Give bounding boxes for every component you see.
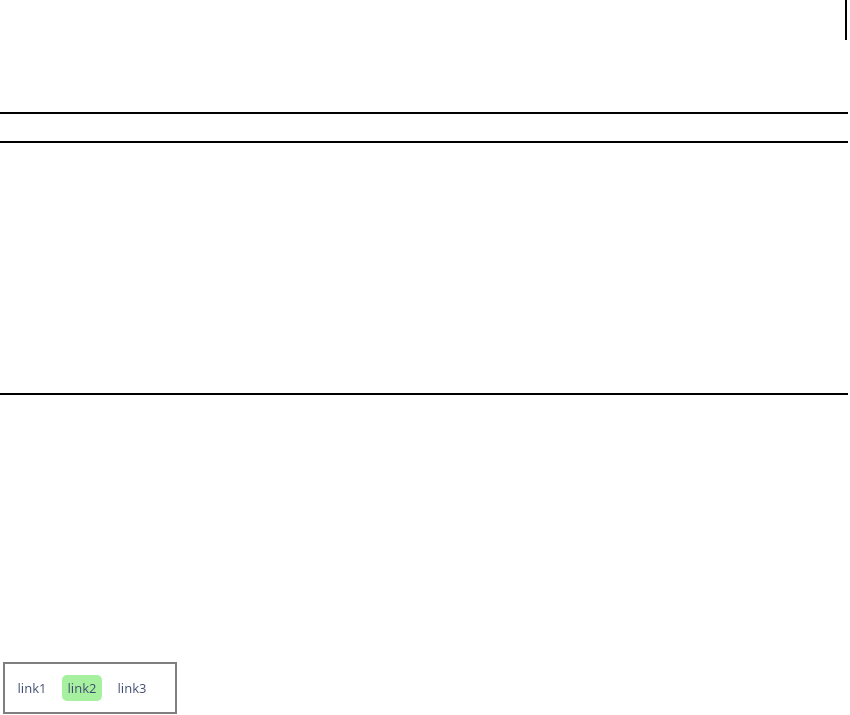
button[interactable]: link3 bbox=[112, 675, 152, 701]
button[interactable]: link1 bbox=[12, 675, 52, 701]
staticText: link1 bbox=[17, 679, 47, 697]
button[interactable]: link2 bbox=[62, 675, 102, 701]
staticText: link2 bbox=[67, 679, 97, 697]
staticText: link3 bbox=[117, 679, 147, 697]
